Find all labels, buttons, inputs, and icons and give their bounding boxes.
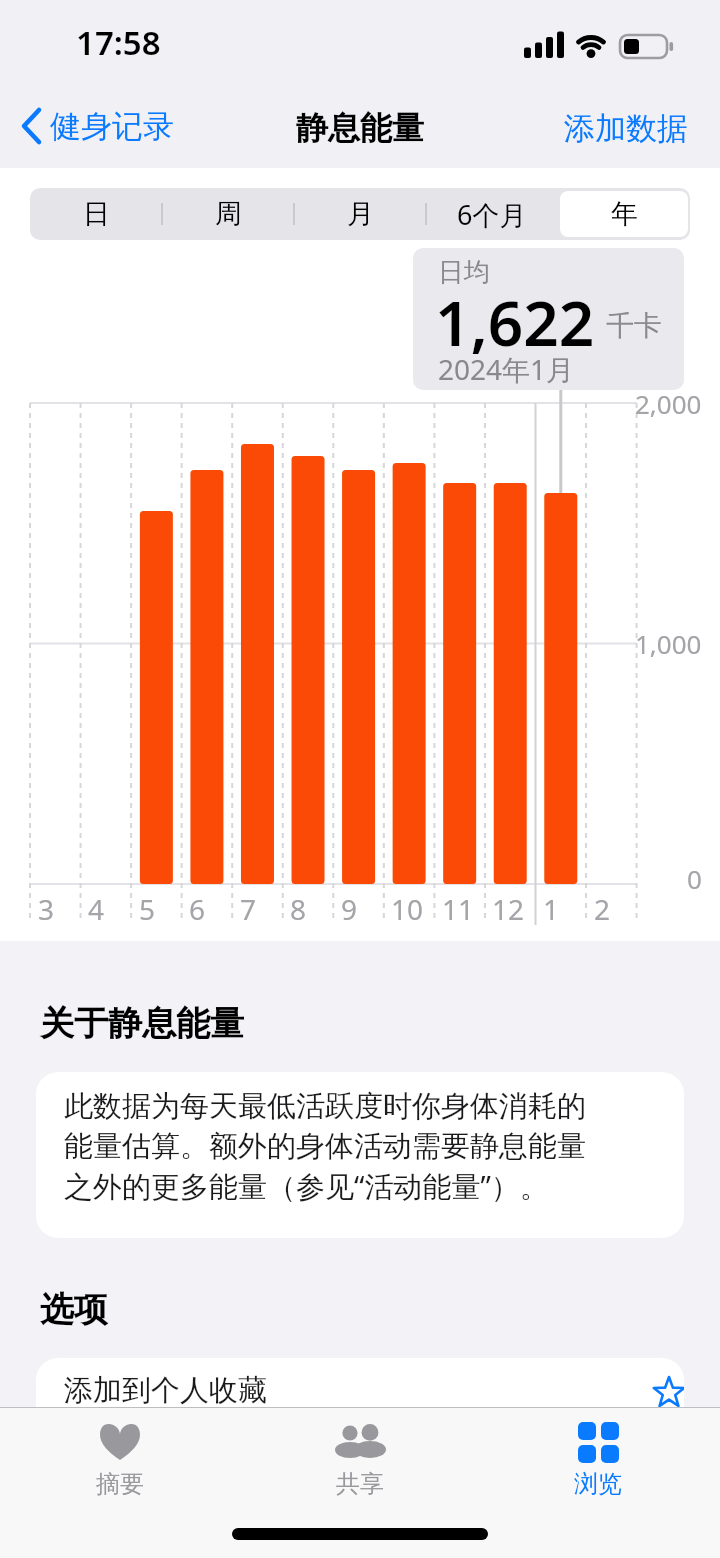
- staticText: 12: [492, 890, 525, 926]
- staticText: 周: [215, 197, 242, 231]
- staticText: 1,000: [635, 626, 702, 661]
- staticText: 选项: [40, 1288, 108, 1331]
- staticText: 4: [88, 890, 105, 926]
- staticText: 2,000: [635, 386, 702, 421]
- button[interactable]: 月: [294, 188, 426, 240]
- staticText: 静息能量: [296, 108, 424, 148]
- staticText: 浏览: [574, 1469, 622, 1499]
- staticText: 10: [391, 890, 424, 926]
- staticText: 添加到个人收藏: [64, 1372, 267, 1409]
- staticText: 共享: [336, 1469, 384, 1499]
- staticText: 1: [543, 890, 560, 926]
- button[interactable]: 摘要: [40, 1415, 200, 1515]
- staticText: 健身记录: [50, 107, 174, 146]
- button[interactable]: 添加到个人收藏: [36, 1358, 684, 1458]
- staticText: 2024年1月: [438, 350, 575, 388]
- button[interactable]: 共享: [280, 1415, 440, 1515]
- staticText: 5: [139, 890, 156, 926]
- staticText: 17:58: [76, 20, 161, 65]
- staticText: 6: [189, 890, 206, 926]
- button[interactable]: 6个月: [426, 188, 558, 240]
- button[interactable]: 年: [558, 188, 690, 240]
- staticText: 此数据为每天最低活跃度时你身体消耗的 能量估算。额外的身体活动需要静息能量 之外…: [64, 1088, 586, 1206]
- staticText: 1,622: [435, 280, 595, 364]
- button[interactable]: 周: [162, 188, 294, 240]
- button[interactable]: 日: [30, 188, 162, 240]
- button[interactable]: 健身记录: [18, 104, 174, 148]
- staticText: 摘要: [96, 1469, 144, 1499]
- staticText: 7: [240, 890, 257, 926]
- staticText: 6个月: [457, 196, 527, 233]
- staticText: 8: [290, 890, 307, 926]
- staticText: 年: [611, 197, 638, 231]
- staticText: 0: [687, 861, 702, 896]
- button[interactable]: 添加数据: [556, 104, 696, 152]
- staticText: 添加数据: [564, 109, 688, 148]
- staticText: 关于静息能量: [40, 1002, 244, 1045]
- staticText: 日: [83, 197, 110, 231]
- staticText: 千卡: [606, 308, 662, 343]
- staticText: 3: [38, 890, 55, 926]
- button[interactable]: 浏览: [518, 1415, 678, 1515]
- staticText: 月: [347, 197, 374, 231]
- staticText: 11: [442, 890, 475, 926]
- staticText: 日均: [438, 256, 490, 289]
- staticText: 9: [341, 890, 358, 926]
- staticText: 2: [594, 890, 611, 926]
